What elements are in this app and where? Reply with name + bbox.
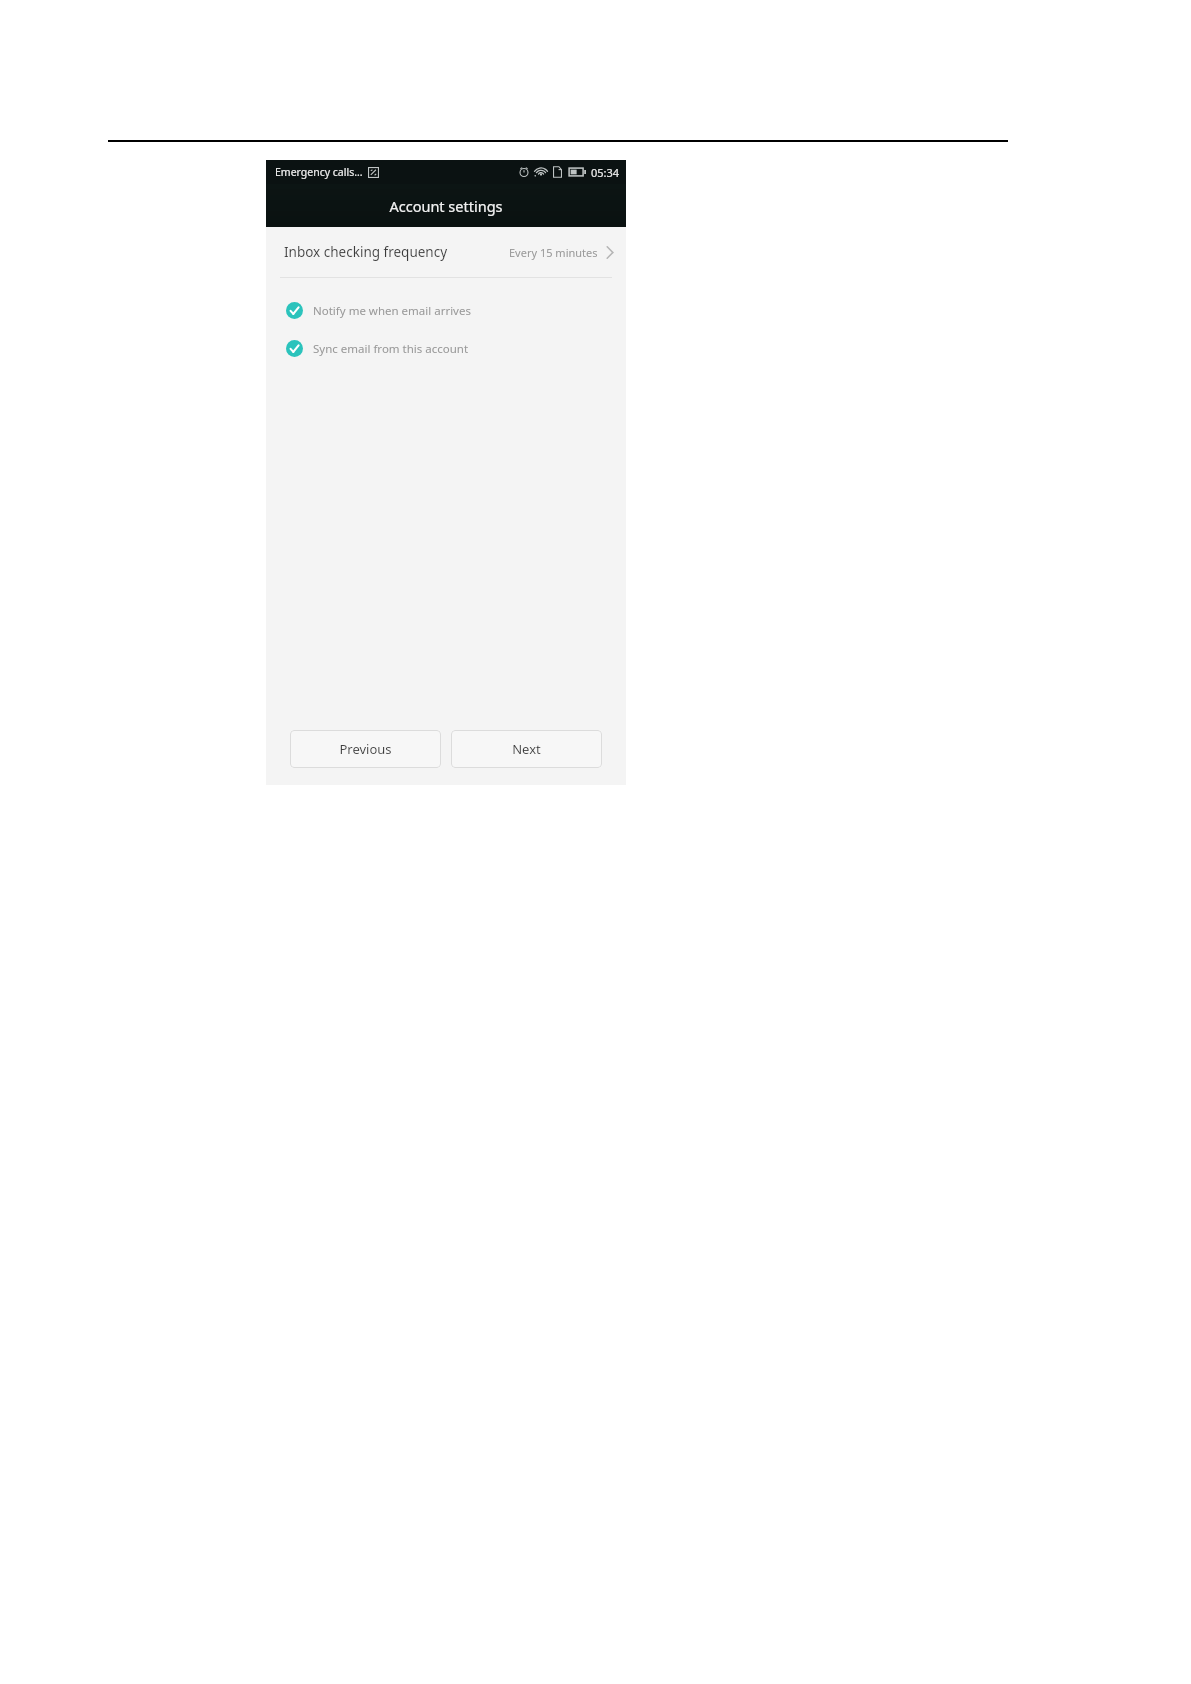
staticText: Notify me when email arrives	[313, 303, 471, 319]
button[interactable]: Previous	[290, 730, 441, 768]
staticText: Account settings	[389, 196, 503, 216]
staticText: Inbox checking frequency	[284, 243, 448, 261]
staticText: 05:34	[591, 165, 620, 180]
button[interactable]: Inbox checking frequency	[266, 227, 626, 277]
staticText: Emergency calls...	[275, 165, 363, 179]
button[interactable]: Next	[451, 730, 602, 768]
staticText: Every 15 minutes	[509, 245, 598, 260]
staticText: Previous	[339, 740, 392, 758]
button[interactable]: Sync email from this account	[266, 336, 626, 361]
staticText: Next	[512, 740, 541, 758]
staticText: Sync email from this account	[313, 341, 469, 357]
button[interactable]: Notify me when email arrives	[266, 298, 626, 323]
